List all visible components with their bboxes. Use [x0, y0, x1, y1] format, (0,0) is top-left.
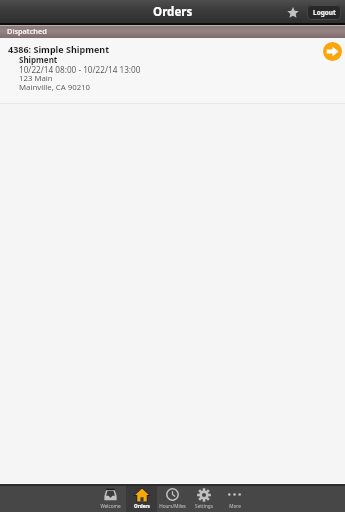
button[interactable]: Orders: [126, 486, 157, 512]
staticText: Shipment: [19, 54, 58, 65]
staticText: More: [229, 503, 241, 509]
button[interactable]: Settings: [188, 486, 219, 512]
button[interactable]: Hours/Miles: [157, 486, 188, 512]
button[interactable]: More: [219, 486, 250, 512]
staticText: Orders: [153, 4, 193, 20]
staticText: 4386: Simple Shipment: [8, 43, 110, 55]
staticText: Logout: [313, 8, 336, 17]
staticText: 10/22/14 08:00 - 10/22/14 13:00: [19, 64, 141, 75]
staticText: Welcome: [100, 503, 121, 509]
button[interactable]: Open order: [323, 42, 342, 61]
staticText: Mainville, CA 90210: [19, 82, 91, 93]
button[interactable]: Welcome: [95, 486, 126, 512]
staticText: 123 Main: [19, 73, 53, 84]
staticText: Hours/Miles: [159, 503, 186, 509]
staticText: Orders: [134, 503, 150, 509]
button[interactable]: Favorites: [284, 4, 302, 22]
staticText: Settings: [195, 503, 213, 509]
staticText: Dispatched: [7, 26, 47, 36]
button[interactable]: Logout: [307, 5, 341, 20]
button[interactable]: 4386: Simple Shipment: [0, 38, 345, 103]
